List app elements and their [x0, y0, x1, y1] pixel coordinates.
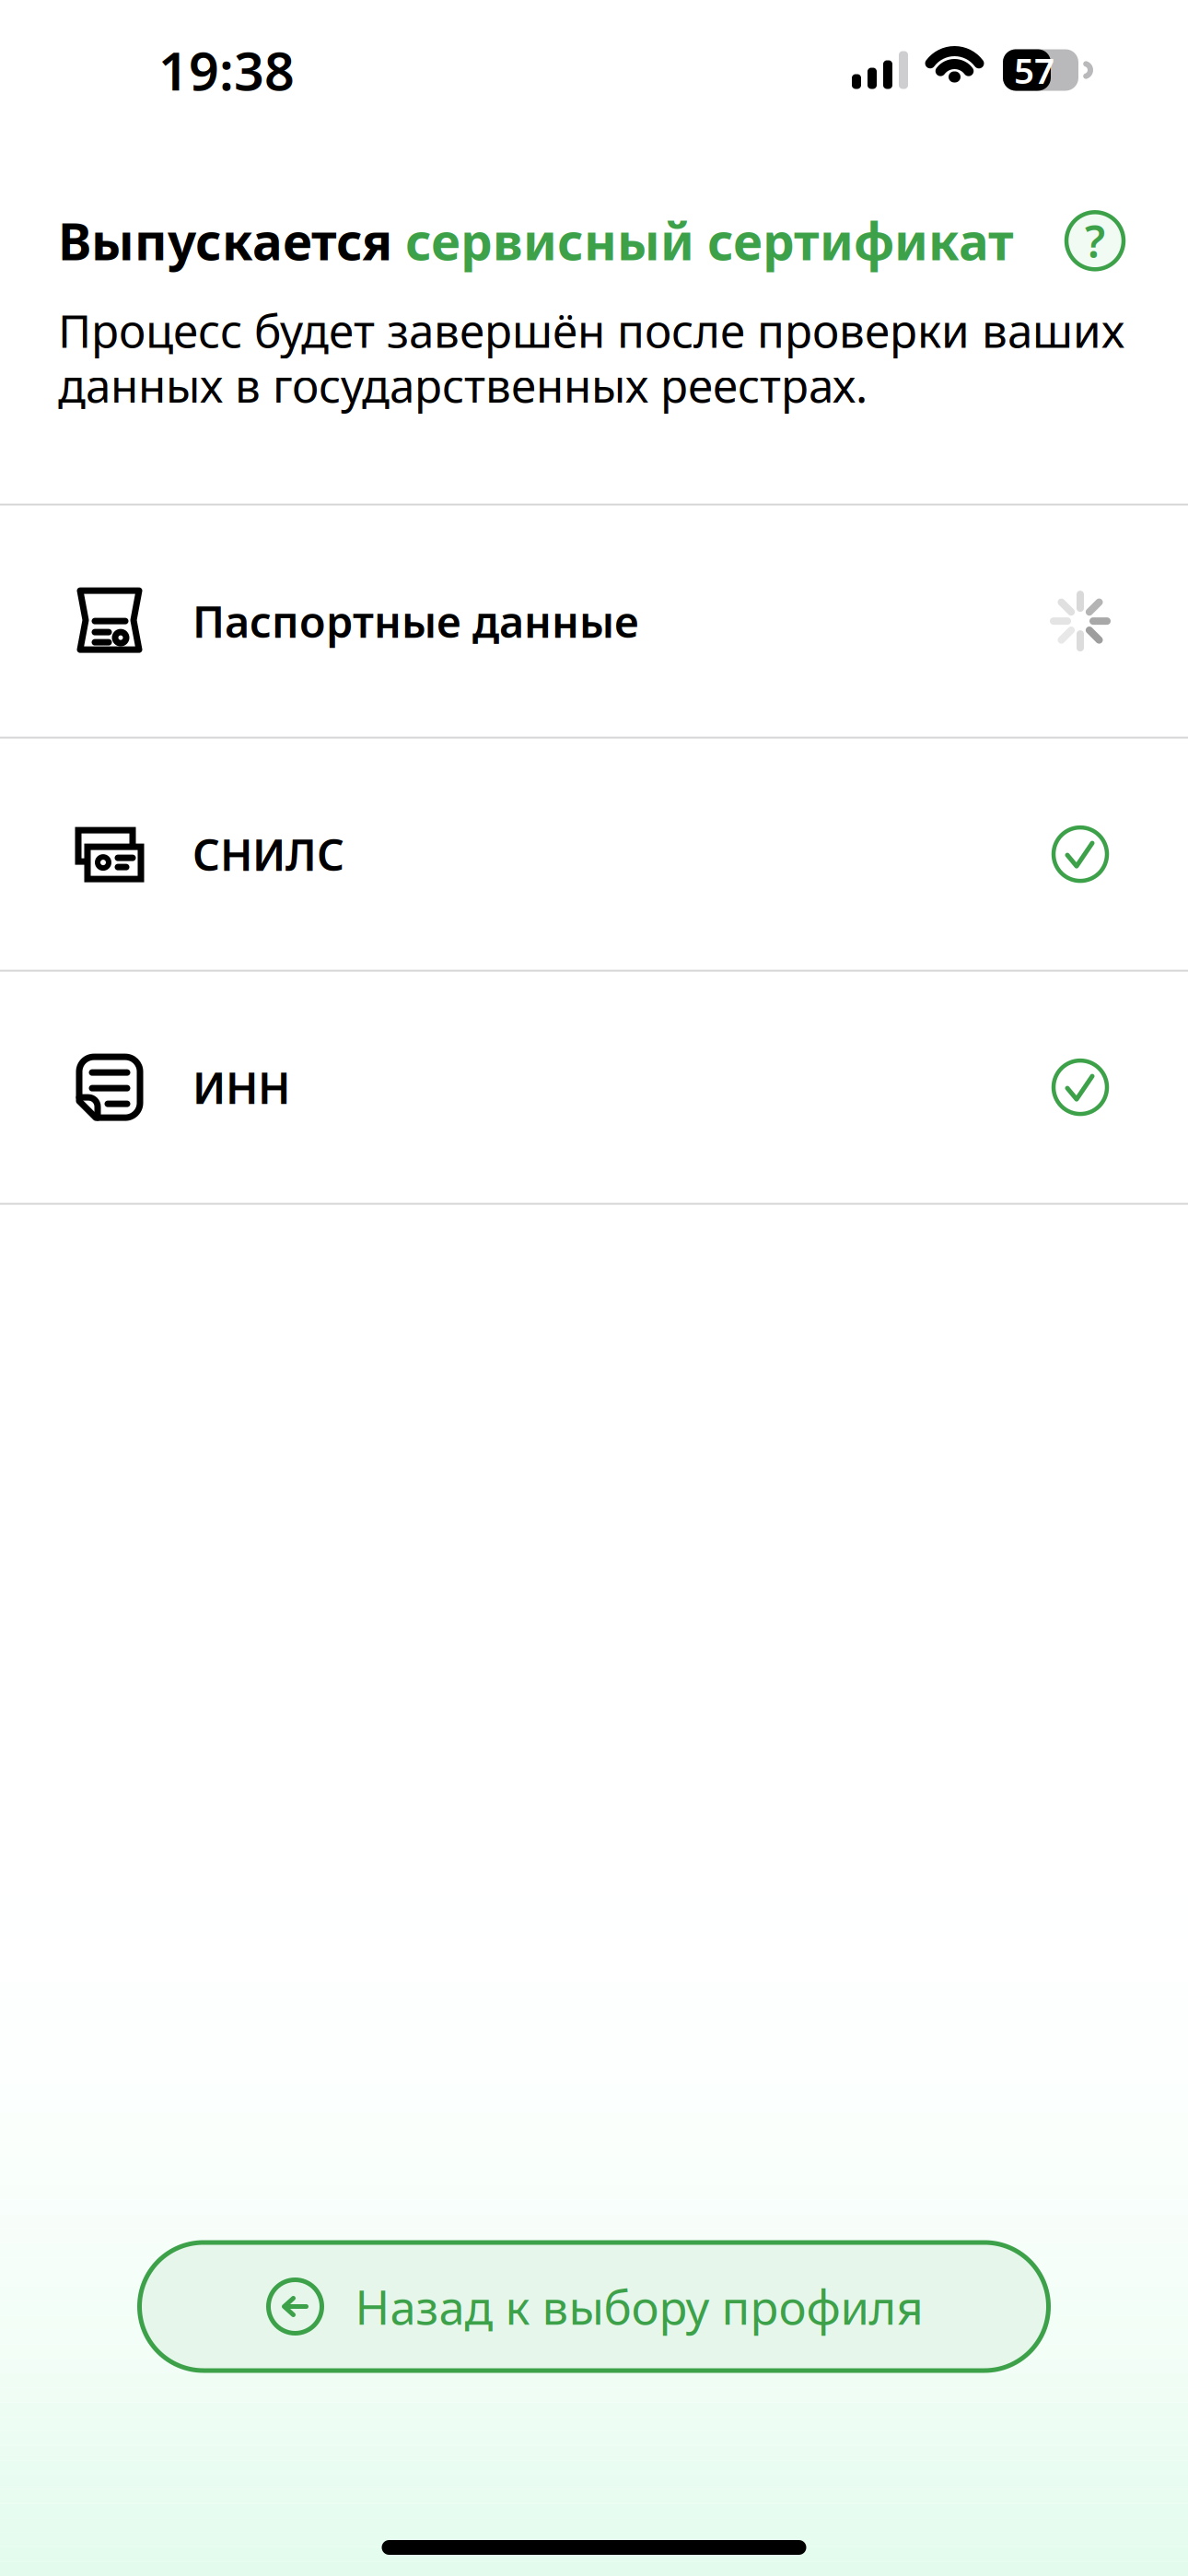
staticText: сервисный сертификат [405, 207, 1014, 274]
staticText: Выпускается [58, 207, 405, 274]
button[interactable]: Справка [1064, 209, 1126, 272]
staticText: ИНН [192, 1059, 290, 1116]
button[interactable]: ИНН [0, 972, 1188, 1205]
staticText: СНИЛС [192, 826, 344, 883]
staticText: 57 [1014, 46, 1054, 94]
staticText: Процесс будет завершён после проверки ва… [58, 300, 1124, 415]
staticText: ? [1085, 211, 1105, 270]
staticText: Паспортные данные [192, 592, 639, 650]
button[interactable]: Назад к выбору профиля [140, 2242, 1048, 2371]
staticText: Назад к выбору профиля [355, 2276, 923, 2338]
staticText: 19:38 [158, 35, 295, 105]
button[interactable]: Паспортные данные [0, 505, 1188, 739]
button[interactable]: СНИЛС [0, 739, 1188, 972]
